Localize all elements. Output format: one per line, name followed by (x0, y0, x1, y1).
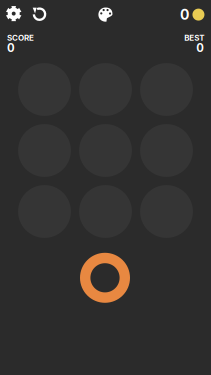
staticText: SCORE (7, 33, 34, 43)
staticText: BEST (184, 33, 204, 43)
button[interactable]: Restart (26, 0, 52, 28)
button[interactable]: Themes (91, 1, 119, 29)
button[interactable]: Settings (0, 0, 27, 28)
staticText: 0 (196, 41, 204, 55)
button[interactable]: Coins (174, 0, 210, 30)
staticText: 0 (180, 6, 189, 23)
staticText: 0 (7, 41, 15, 55)
